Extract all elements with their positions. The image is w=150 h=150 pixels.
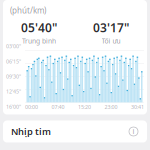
staticText: 00:00: [25, 103, 38, 110]
staticText: 06'15": [6, 58, 21, 65]
staticText: 03'17": [93, 20, 129, 35]
staticText: 05'40": [21, 20, 57, 35]
staticText: 15:20: [78, 103, 91, 110]
staticText: Tối ưu: [101, 37, 120, 45]
staticText: 07:40: [51, 103, 64, 110]
staticText: Nhịp tim: [11, 125, 51, 138]
staticText: 03'00": [6, 43, 21, 50]
staticText: 23:00: [104, 103, 117, 110]
staticText: 16'00": [6, 103, 21, 110]
staticText: (phút/km): [10, 5, 46, 16]
staticText: i: [132, 127, 134, 136]
staticText: 09'30": [6, 73, 21, 80]
button[interactable]: Nhịp tim: [3, 120, 147, 142]
staticText: 12'45": [6, 88, 21, 95]
staticText: Trung bình: [22, 37, 56, 45]
staticText: 30:41: [131, 103, 144, 110]
